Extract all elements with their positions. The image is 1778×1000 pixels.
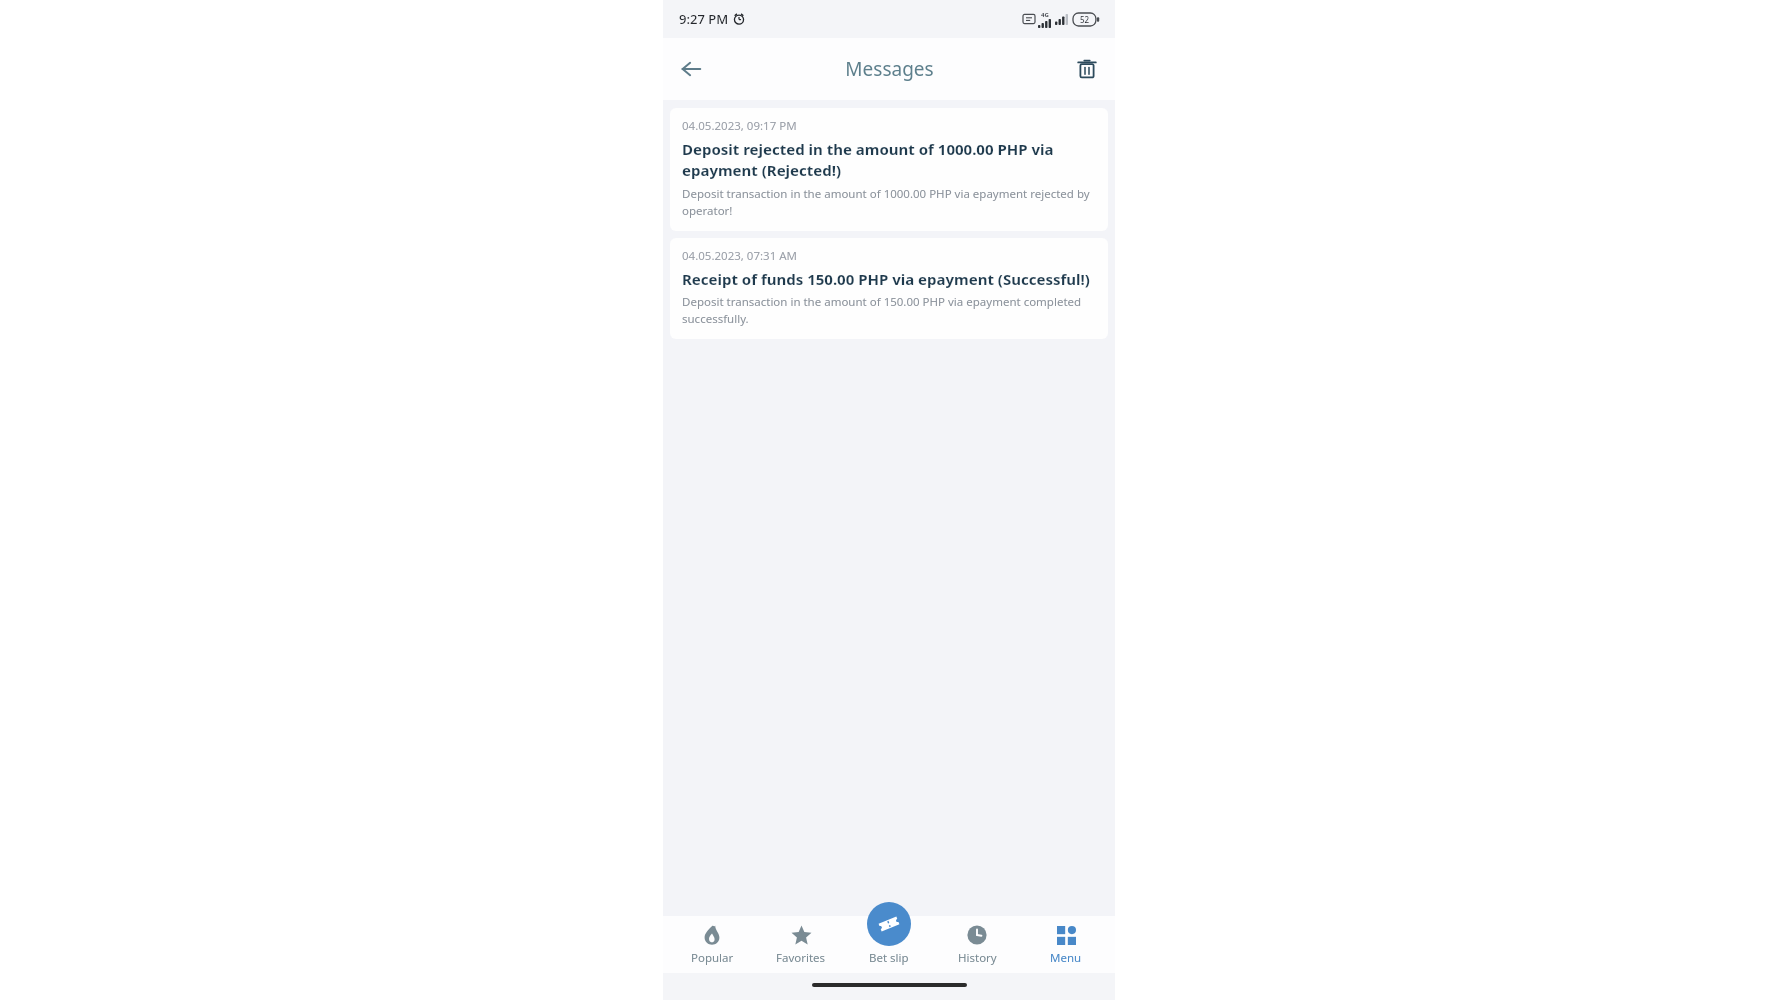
staticText: Receipt of funds 150.00 PHP via epayment… [682,269,1090,289]
button[interactable]: Popular [673,916,751,973]
staticText: 52 [1080,14,1090,25]
staticText: 04.05.2023, 09:17 PM [682,118,797,134]
button[interactable]: History [938,916,1016,973]
button[interactable]: Delete all messages [1059,41,1115,97]
staticText: Favorites [776,950,826,966]
staticText: Bet slip [869,950,909,966]
staticText: 4G [1041,11,1049,19]
button[interactable]: Favorites [762,916,840,973]
staticText: Deposit transaction in the amount of 150… [682,294,1096,326]
button[interactable]: 04.05.2023, 09:17 PM [670,108,1108,231]
staticText: 9:27 PM [679,10,729,28]
staticText: History [958,950,997,966]
staticText: Menu [1050,950,1082,966]
button[interactable]: Bet slip [867,902,911,946]
staticText: Deposit rejected in the amount of 1000.0… [682,139,1096,181]
staticText: 04.05.2023, 07:31 AM [682,248,798,264]
button[interactable]: Back [663,41,719,97]
staticText: Deposit transaction in the amount of 100… [682,186,1096,218]
staticText: Popular [691,950,734,966]
button[interactable]: 04.05.2023, 07:31 AM [670,238,1108,339]
button[interactable]: Bet slip [850,916,928,973]
button[interactable]: Menu [1027,916,1105,973]
staticText: Messages [845,56,934,82]
